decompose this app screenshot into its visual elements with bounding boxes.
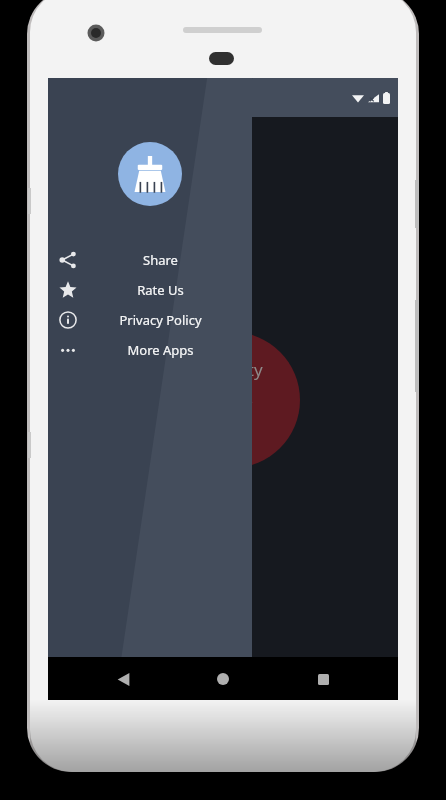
button[interactable]: Privacy Policy [48, 305, 252, 335]
staticText: Folders [194, 387, 253, 410]
staticText: No Empty [184, 358, 263, 381]
button[interactable]: Home [206, 662, 240, 696]
button[interactable]: Recent apps [306, 662, 340, 696]
staticText: Privacy Policy [119, 311, 202, 329]
staticText: More Apps [127, 341, 194, 359]
button[interactable]: Rate Us [48, 275, 252, 305]
button[interactable]: App icon [118, 142, 182, 206]
button[interactable]: Share [48, 245, 252, 275]
button[interactable]: Back [106, 662, 140, 696]
staticText: Share [143, 251, 178, 269]
button[interactable]: More Apps [48, 335, 252, 365]
staticText: Rate Us [137, 281, 184, 299]
